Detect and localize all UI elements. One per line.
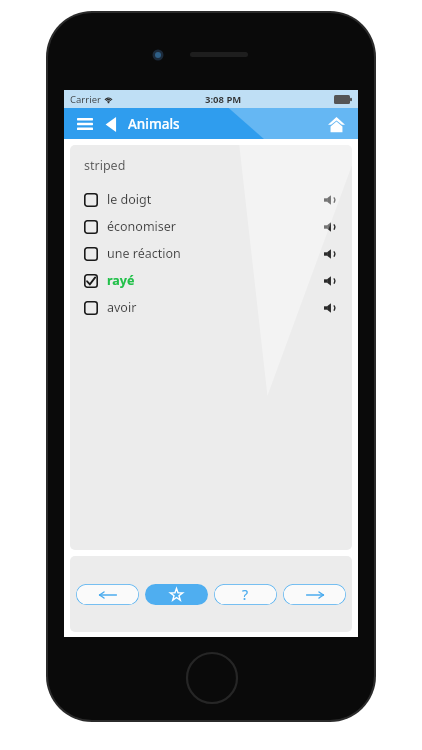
button[interactable]: Action [76, 584, 139, 605]
staticText: Animals [128, 115, 180, 133]
button[interactable]: rayé [84, 269, 340, 292]
staticText: ? [242, 585, 249, 604]
staticText: 3:08 PM [205, 93, 242, 106]
staticText: une réaction [107, 245, 181, 262]
staticText: Carrier [70, 93, 101, 106]
button[interactable]: Play audio for une réaction [320, 244, 340, 264]
button[interactable]: Play audio for le doigt [320, 190, 340, 210]
button[interactable]: Play audio for avoir [320, 298, 340, 318]
button[interactable]: Menu [72, 111, 98, 137]
button[interactable]: Home [322, 110, 350, 138]
button[interactable]: le doigt [84, 188, 340, 211]
button[interactable]: Back [100, 111, 122, 137]
button[interactable]: Play audio for économiser [320, 217, 340, 237]
button[interactable]: Favorite [145, 584, 208, 605]
staticText: économiser [107, 218, 177, 235]
button[interactable]: Action [283, 584, 346, 605]
button[interactable]: économiser [84, 215, 340, 238]
button[interactable]: une réaction [84, 242, 340, 265]
staticText: le doigt [107, 191, 152, 208]
staticText: rayé [107, 272, 135, 289]
staticText: avoir [107, 299, 137, 316]
staticText: striped [84, 157, 126, 174]
button[interactable]: Play audio for rayé [320, 271, 340, 291]
button[interactable]: avoir [84, 296, 340, 319]
button[interactable]: Action [214, 584, 277, 605]
